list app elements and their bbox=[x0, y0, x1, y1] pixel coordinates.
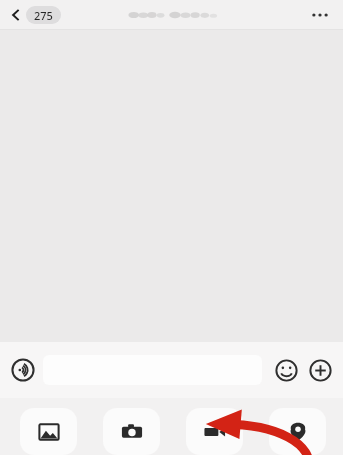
button[interactable]: Gallery bbox=[20, 408, 77, 455]
button[interactable]: Emoji bbox=[271, 355, 301, 385]
button[interactable]: Back, 275 unread bbox=[8, 4, 63, 26]
staticText: 275 bbox=[34, 8, 53, 23]
button[interactable]: Location bbox=[269, 408, 326, 455]
button[interactable]: Camera bbox=[103, 408, 160, 455]
button[interactable]: More options bbox=[307, 2, 333, 28]
button[interactable]: Video bbox=[186, 408, 243, 455]
button[interactable]: Voice message bbox=[8, 355, 38, 385]
button[interactable]: Add attachment bbox=[305, 355, 335, 385]
